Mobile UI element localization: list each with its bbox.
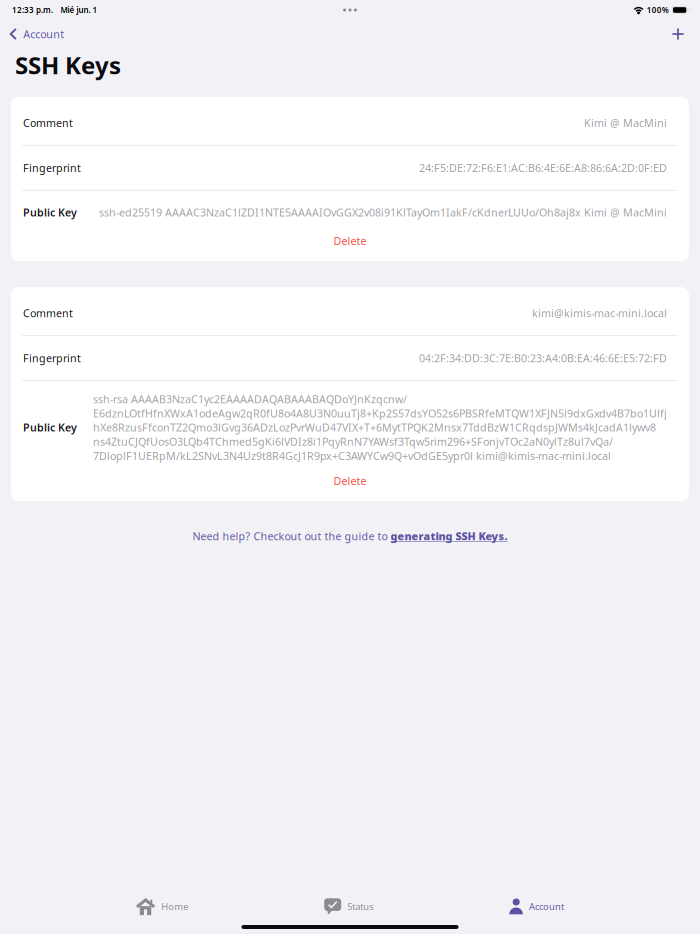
- staticText: Delete: [333, 474, 366, 488]
- button[interactable]: Need help? Checkout out the guide to: [192, 529, 507, 543]
- button[interactable]: Delete: [11, 234, 689, 261]
- staticText: ssh-rsa AAAAB3NzaC1yc2EAAAADAQABAAABAQDo…: [93, 392, 667, 463]
- button[interactable]: Home: [136, 894, 188, 919]
- staticText: generating SSH Keys.: [390, 529, 507, 543]
- staticText: ssh-ed25519 AAAAC3NzaC1lZDI1NTE5AAAAIOvG…: [99, 205, 667, 219]
- staticText: Account: [23, 27, 64, 41]
- staticText: Comment: [23, 306, 73, 320]
- staticText: Kimi @ MacMini: [584, 116, 667, 130]
- button[interactable]: Add SSH key: [662, 23, 700, 45]
- button[interactable]: Delete: [11, 474, 689, 501]
- staticText: Need help? Checkout out the guide to: [192, 529, 390, 543]
- button[interactable]: Account: [509, 895, 564, 918]
- staticText: Public Key: [23, 205, 77, 219]
- staticText: Fingerprint: [23, 351, 81, 365]
- staticText: 04:2F:34:DD:3C:7E:B0:23:A4:0B:EA:46:6E:E…: [419, 351, 667, 365]
- staticText: Fingerprint: [23, 161, 81, 175]
- staticText: Home: [161, 900, 188, 913]
- staticText: 24:F5:DE:72:F6:E1:AC:B6:4E:6E:A8:86:6A:2…: [419, 161, 667, 175]
- staticText: 12:33 p.m.: [12, 5, 53, 15]
- staticText: Mié jun. 1: [60, 5, 97, 15]
- staticText: 100%: [647, 5, 669, 15]
- staticText: Delete: [333, 234, 366, 248]
- staticText: Account: [529, 900, 564, 913]
- staticText: Public Key: [23, 420, 77, 435]
- button[interactable]: Account: [0, 22, 72, 46]
- button[interactable]: Status: [324, 894, 373, 919]
- staticText: Status: [347, 900, 373, 913]
- staticText: Comment: [23, 116, 73, 130]
- staticText: kimi@kimis-mac-mini.local: [532, 306, 667, 320]
- staticText: SSH Keys: [15, 49, 121, 81]
